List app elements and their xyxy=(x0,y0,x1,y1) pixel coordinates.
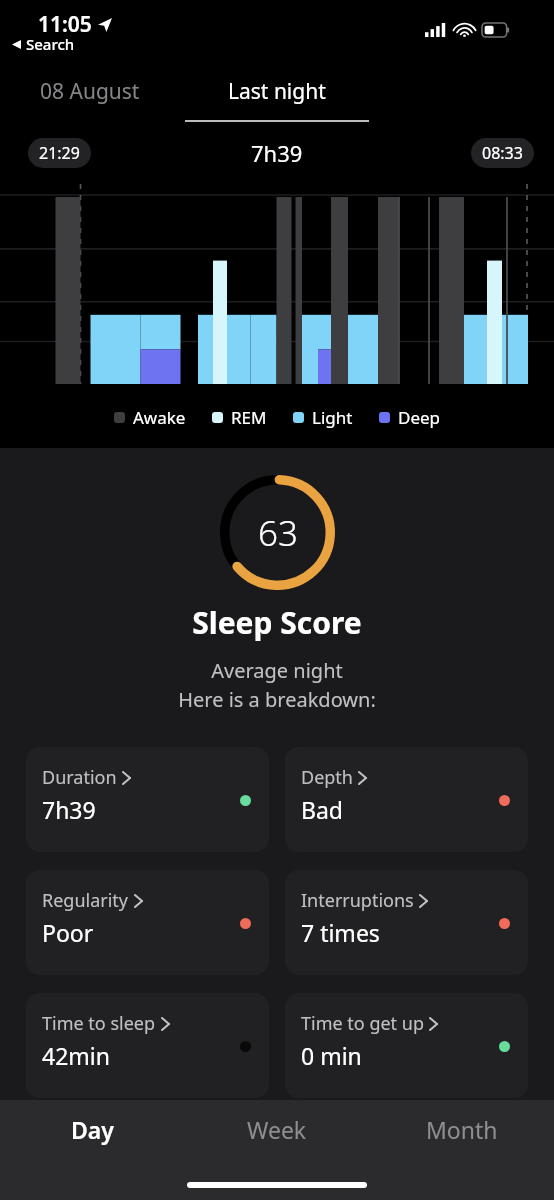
staticText: Month xyxy=(426,1114,498,1145)
button[interactable]: REM xyxy=(212,406,267,429)
button[interactable]: Interruptions xyxy=(285,870,528,975)
staticText: Average night xyxy=(0,657,554,684)
button[interactable]: Time to get up xyxy=(285,993,528,1098)
button[interactable]: 08 August xyxy=(0,60,180,122)
staticText: 0 min xyxy=(301,1040,362,1071)
staticText: 7h39 xyxy=(251,138,303,168)
staticText: Here is a breakdown: xyxy=(0,686,554,713)
button[interactable]: Light xyxy=(293,406,353,429)
staticText: Day xyxy=(71,1114,114,1145)
button[interactable]: Day xyxy=(0,1100,184,1158)
button[interactable]: Awake xyxy=(114,406,186,429)
staticText: REM xyxy=(231,406,267,429)
staticText: 42min xyxy=(42,1040,110,1071)
button[interactable]: 08:33 xyxy=(471,138,534,168)
staticText: Week xyxy=(247,1114,307,1145)
staticText: Last night xyxy=(228,77,326,106)
staticText: Search xyxy=(26,34,75,54)
staticText: 08:33 xyxy=(482,142,523,164)
staticText: Awake xyxy=(133,406,186,429)
staticText: Depth xyxy=(301,765,353,790)
button[interactable]: Duration xyxy=(26,747,269,852)
staticText: 11:05 xyxy=(38,10,92,39)
staticText: Duration xyxy=(42,765,117,790)
staticText: Light xyxy=(312,406,353,429)
staticText: 21:29 xyxy=(39,142,80,164)
button[interactable]: Last night xyxy=(185,60,369,122)
staticText: Sleep Score xyxy=(0,602,554,643)
button[interactable]: Deep xyxy=(379,406,441,429)
button[interactable]: Time to sleep xyxy=(26,993,269,1098)
staticText: Deep xyxy=(398,406,441,429)
button[interactable]: Month xyxy=(369,1100,554,1158)
staticText: 63 xyxy=(258,509,298,557)
button[interactable]: Regularity xyxy=(26,870,269,975)
staticText: Time to sleep xyxy=(42,1011,156,1036)
staticText: Time to get up xyxy=(301,1011,424,1036)
staticText: Regularity xyxy=(42,888,129,913)
staticText: 7h39 xyxy=(42,794,96,825)
staticText: Interruptions xyxy=(301,888,414,913)
button[interactable]: Depth xyxy=(285,747,528,852)
staticText: Bad xyxy=(301,794,343,825)
staticText: Poor xyxy=(42,917,94,948)
staticText: 7 times xyxy=(301,917,380,948)
staticText: 08 August xyxy=(40,77,140,106)
button[interactable]: Week xyxy=(184,1100,369,1158)
button[interactable]: 21:29 xyxy=(28,138,91,168)
